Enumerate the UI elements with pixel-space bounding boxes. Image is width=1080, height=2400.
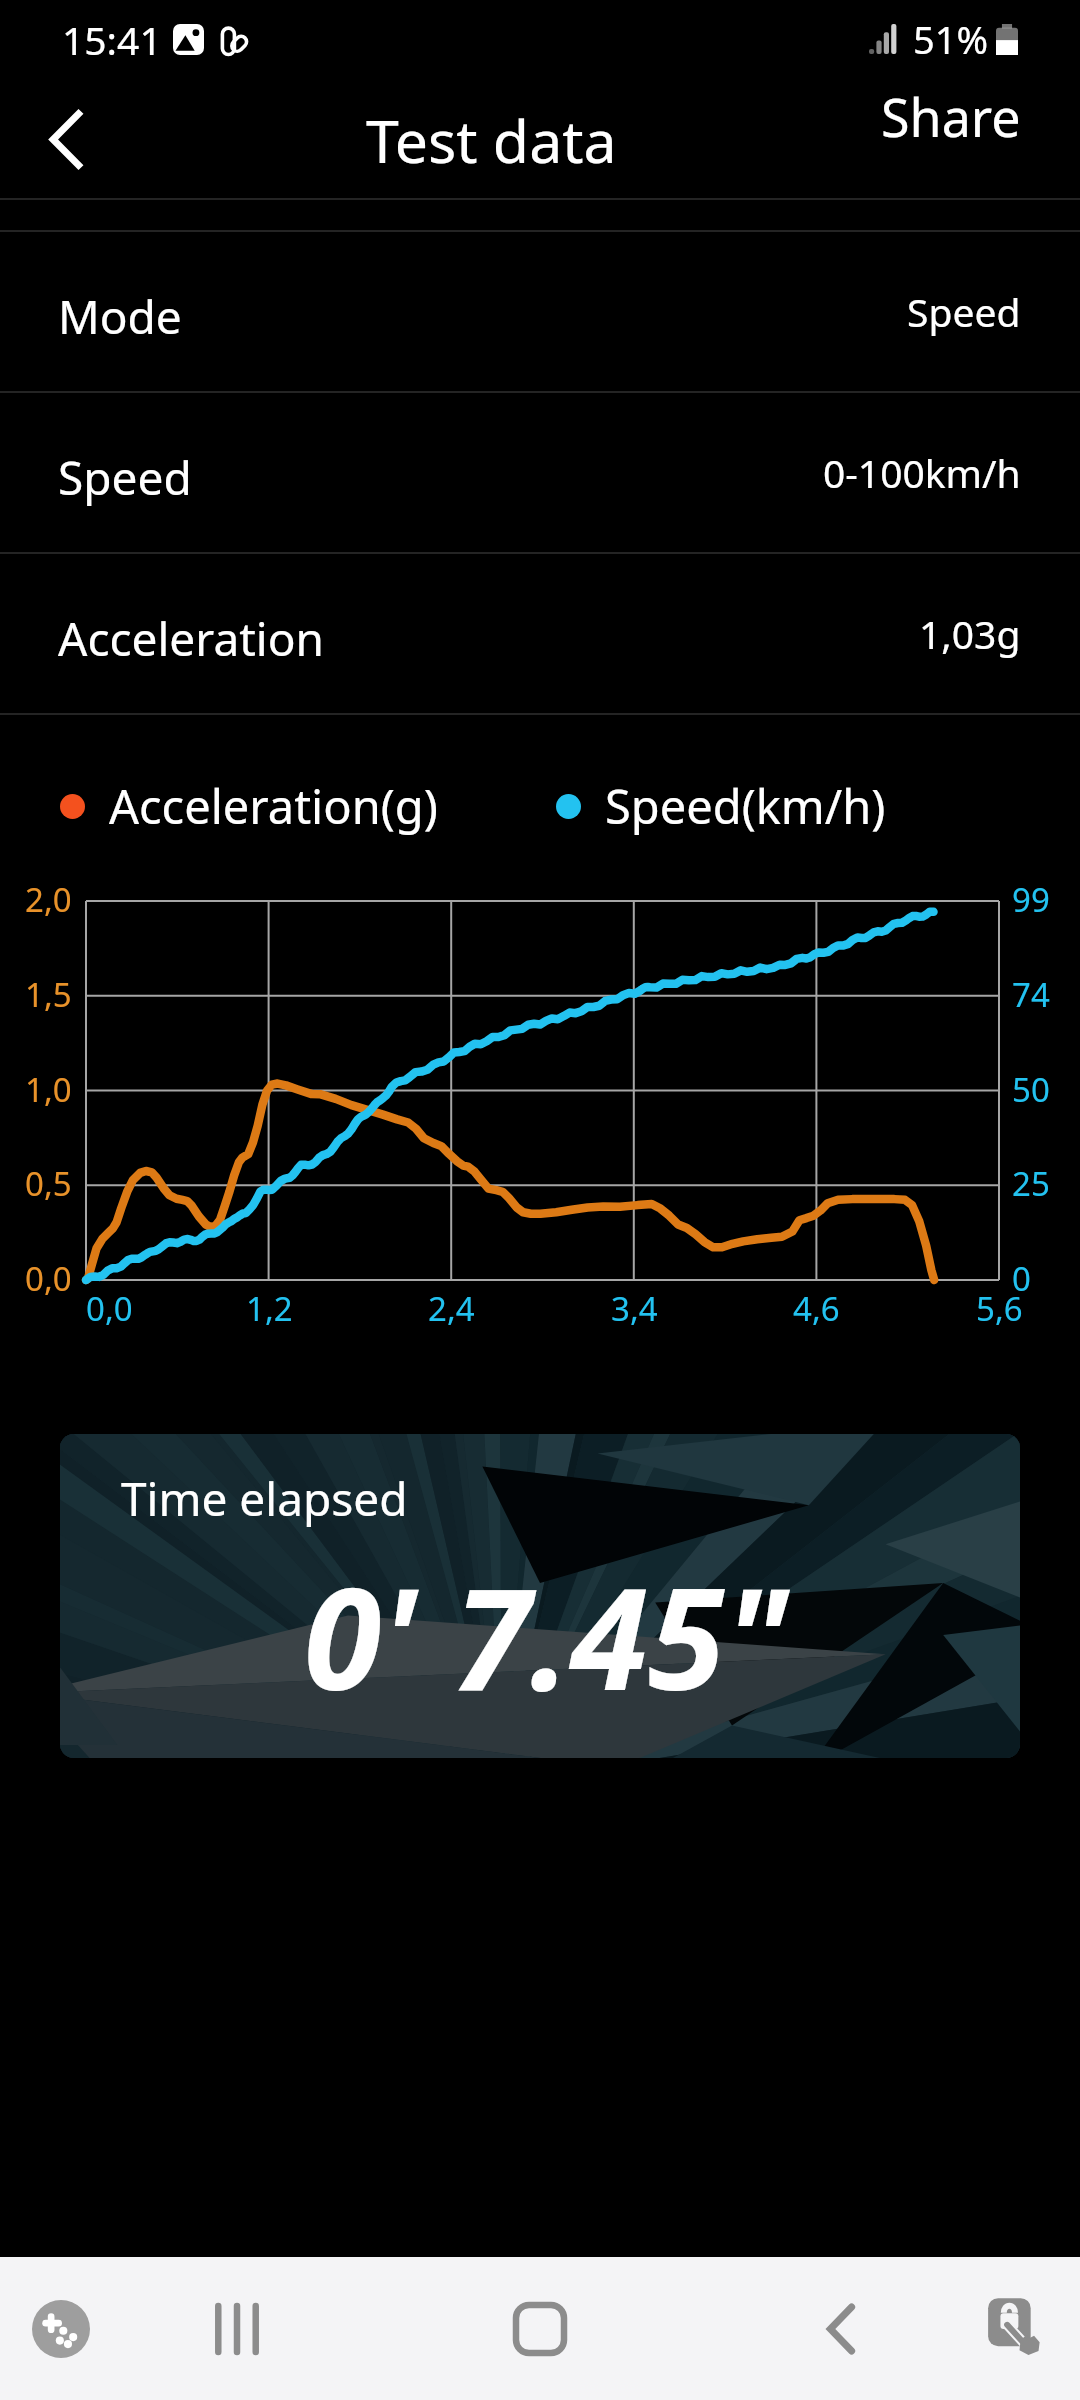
staticText: Speed	[907, 285, 1021, 338]
staticText: 1,0	[25, 1067, 72, 1112]
staticText: 1,03g	[919, 607, 1021, 660]
button[interactable]: Acceleration	[0, 552, 1080, 713]
staticText: Test data	[366, 100, 617, 180]
staticText: Share	[881, 81, 1021, 152]
button[interactable]: Speed	[0, 391, 1080, 552]
staticText: 50	[1012, 1067, 1050, 1112]
staticText: 2,4	[428, 1286, 475, 1331]
staticText: 3,4	[611, 1286, 658, 1331]
button[interactable]: Recents	[182, 2274, 292, 2384]
button[interactable]: Back	[786, 2274, 896, 2384]
staticText: 5,6	[976, 1286, 1023, 1331]
staticText: 0-100km/h	[823, 446, 1021, 499]
staticText: 15:41	[62, 13, 162, 66]
staticText: 1,2	[246, 1286, 293, 1331]
staticText: Mode	[58, 285, 182, 348]
staticText: 0	[1012, 1256, 1031, 1301]
button[interactable]: Home	[485, 2274, 595, 2384]
button[interactable]: Screen pin	[965, 2276, 1065, 2376]
button[interactable]: Share	[853, 65, 1049, 168]
button[interactable]: Back	[11, 85, 119, 193]
staticText: Time elapsed	[121, 1467, 408, 1530]
button[interactable]: Time elapsed	[60, 1434, 1020, 1758]
button[interactable]: Game tools	[14, 2282, 108, 2376]
staticText: 1,5	[25, 972, 72, 1017]
staticText: Acceleration(g)	[109, 774, 438, 838]
staticText: 4,6	[793, 1286, 840, 1331]
staticText: Speed	[58, 446, 192, 509]
staticText: 0,5	[25, 1161, 72, 1206]
staticText: 99	[1012, 877, 1050, 922]
staticText: 25	[1012, 1161, 1050, 1206]
staticText: Acceleration	[58, 607, 324, 670]
staticText: 0' 7.45"	[304, 1540, 789, 1731]
staticText: 2,0	[25, 877, 72, 922]
staticText: Speed(km/h)	[605, 774, 886, 838]
staticText: 74	[1012, 972, 1050, 1017]
staticText: 0,0	[25, 1256, 72, 1301]
staticText: 0,0	[86, 1286, 133, 1331]
button[interactable]: Mode	[0, 230, 1080, 391]
staticText: 51%	[913, 13, 989, 65]
